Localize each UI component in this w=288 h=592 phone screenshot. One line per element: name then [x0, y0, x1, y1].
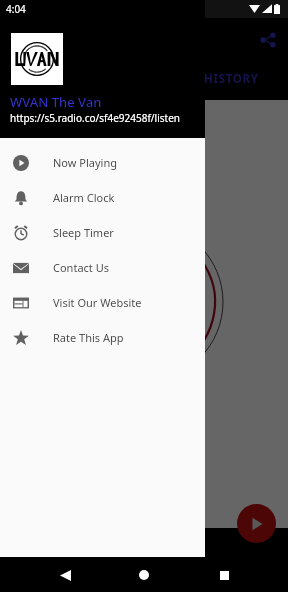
staticText: Sleep Timer — [53, 225, 114, 240]
button[interactable]: Alarm Clock — [0, 180, 205, 215]
button[interactable]: Back — [50, 560, 80, 590]
staticText: 4:04 — [6, 2, 26, 16]
button[interactable]: Visit Our Website — [0, 285, 205, 320]
button[interactable]: Recents — [209, 560, 239, 590]
staticText: Visit Our Website — [53, 295, 142, 310]
button[interactable]: Contact Us — [0, 250, 205, 285]
button[interactable]: Sleep Timer — [0, 215, 205, 250]
button[interactable]: Home — [129, 560, 159, 590]
button[interactable]: Play — [237, 504, 276, 543]
staticText: https://s5.radio.co/sf4e92458f/listen — [10, 111, 180, 125]
staticText: WVAN The Van — [10, 93, 102, 111]
staticText: Rate This App — [53, 330, 124, 345]
staticText: Contact Us — [53, 260, 109, 275]
button[interactable]: HISTORY — [187, 62, 275, 96]
button[interactable]: Rate This App — [0, 320, 205, 355]
staticText: HISTORY — [204, 71, 259, 87]
staticText: Alarm Clock — [53, 190, 115, 205]
button[interactable]: Share — [260, 32, 276, 48]
staticText: Now Playing — [53, 155, 117, 170]
button[interactable]: Now Playing — [0, 145, 205, 180]
